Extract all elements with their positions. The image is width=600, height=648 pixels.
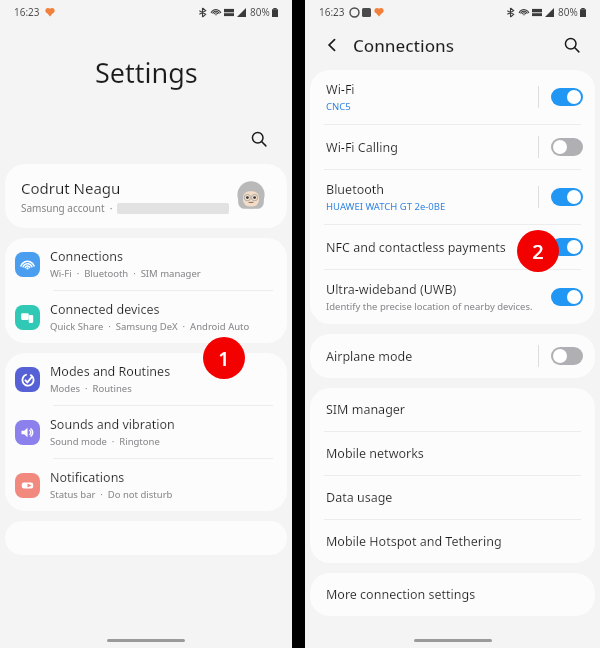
staticText: SIM manager bbox=[326, 401, 406, 418]
staticText: Ultra-wideband (UWB) bbox=[326, 281, 457, 298]
button[interactable]: Off bbox=[551, 138, 583, 156]
button[interactable]: Codrut Neagu bbox=[5, 164, 287, 228]
button[interactable]: Connected devices bbox=[5, 291, 287, 343]
button[interactable]: Wi-Fi bbox=[310, 70, 595, 124]
staticText: Data usage bbox=[326, 489, 393, 506]
button[interactable]: On bbox=[551, 88, 583, 106]
staticText: Connections bbox=[50, 248, 123, 265]
button[interactable]: Wi-Fi Calling bbox=[310, 125, 595, 169]
button[interactable]: On bbox=[551, 238, 583, 256]
staticText: Connected devices bbox=[50, 301, 160, 318]
staticText: Status bar · Do not disturb bbox=[50, 488, 173, 501]
staticText: 2 bbox=[532, 238, 544, 265]
button[interactable]: NFC and contactless payments bbox=[310, 225, 595, 269]
button[interactable]: Ultra-wideband (UWB) bbox=[310, 270, 595, 324]
staticText: Wi-Fi · Bluetooth · SIM manager bbox=[50, 267, 201, 280]
staticText: Notifications bbox=[50, 469, 125, 486]
button[interactable]: Sounds and vibration bbox=[5, 406, 287, 458]
button[interactable]: Mobile Hotspot and Tethering bbox=[310, 520, 595, 563]
staticText: Bluetooth bbox=[326, 181, 385, 198]
button[interactable]: Back bbox=[319, 32, 345, 58]
staticText: CNC5 bbox=[326, 100, 351, 113]
staticText: Modes · Routines bbox=[50, 382, 132, 395]
staticText: Airplane mode bbox=[326, 348, 413, 365]
staticText: 16:23 bbox=[319, 5, 345, 19]
button[interactable]: Notifications bbox=[5, 459, 287, 511]
staticText: Connections bbox=[353, 34, 455, 57]
staticText: Wi-Fi Calling bbox=[326, 139, 398, 156]
staticText: Mobile Hotspot and Tethering bbox=[326, 533, 502, 550]
staticText: More connection settings bbox=[326, 586, 476, 603]
button[interactable]: SIM manager bbox=[310, 388, 595, 431]
button[interactable]: More connection settings bbox=[310, 573, 595, 616]
staticText: Modes and Routines bbox=[50, 363, 171, 380]
staticText: 16:23 bbox=[14, 5, 40, 19]
button[interactable]: On bbox=[551, 188, 583, 206]
staticText: Quick Share · Samsung DeX · Android Auto bbox=[50, 320, 250, 333]
staticText: 80% bbox=[558, 5, 578, 19]
staticText: 1 bbox=[218, 345, 230, 372]
staticText: Sounds and vibration bbox=[50, 416, 175, 433]
staticText: Wi-Fi bbox=[326, 81, 355, 98]
button[interactable]: Modes and Routines bbox=[5, 353, 287, 405]
button[interactable]: Connections bbox=[5, 238, 287, 290]
staticText: Mobile networks bbox=[326, 445, 424, 462]
button[interactable]: Data usage bbox=[310, 476, 595, 519]
staticText: Codrut Neagu bbox=[21, 178, 121, 198]
button[interactable]: Off bbox=[551, 347, 583, 365]
button[interactable]: Bluetooth bbox=[310, 170, 595, 224]
staticText: HUAWEI WATCH GT 2e-0BE bbox=[326, 200, 446, 213]
staticText: 80% bbox=[250, 5, 270, 19]
staticText: Settings bbox=[95, 54, 198, 91]
button[interactable]: Search bbox=[558, 31, 586, 59]
staticText: Identify the precise location of nearby … bbox=[326, 300, 533, 313]
staticText: Samsung account · bbox=[21, 201, 113, 215]
button[interactable]: Mobile networks bbox=[310, 432, 595, 475]
button[interactable]: Airplane mode bbox=[310, 334, 595, 378]
staticText: Sound mode · Ringtone bbox=[50, 435, 160, 448]
button[interactable]: On bbox=[551, 288, 583, 306]
button[interactable]: Search bbox=[244, 124, 274, 154]
staticText: NFC and contactless payments bbox=[326, 239, 506, 256]
